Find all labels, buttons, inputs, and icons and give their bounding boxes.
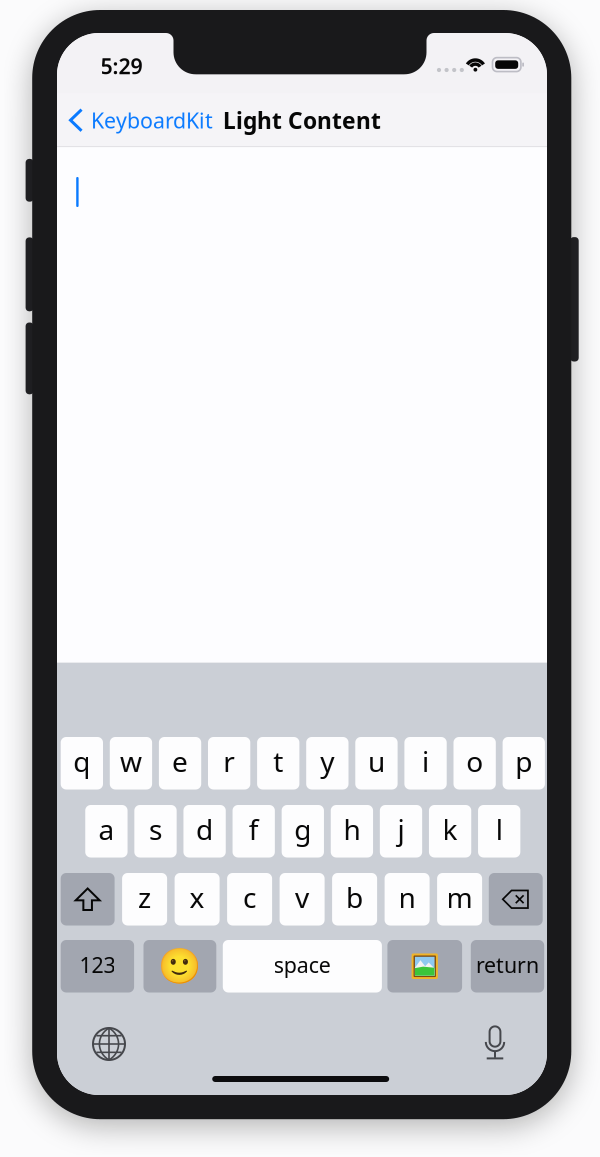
staticText: f bbox=[249, 811, 259, 848]
button[interactable]: 123 bbox=[61, 940, 134, 992]
button[interactable]: KeyboardKit bbox=[69, 99, 213, 141]
button[interactable]: Delete bbox=[489, 873, 543, 925]
staticText: l bbox=[496, 811, 503, 848]
button[interactable]: o bbox=[453, 737, 496, 789]
staticText: r bbox=[223, 743, 235, 780]
button[interactable]: m bbox=[437, 873, 482, 925]
button[interactable]: q bbox=[61, 737, 103, 789]
button[interactable]: i bbox=[404, 737, 447, 789]
staticText: j bbox=[397, 811, 404, 848]
staticText: n bbox=[399, 879, 416, 916]
staticText: Light Content bbox=[223, 105, 381, 135]
button[interactable]: Next keyboard bbox=[85, 1020, 133, 1068]
staticText: u bbox=[368, 743, 385, 780]
button[interactable]: g bbox=[282, 805, 324, 857]
staticText: s bbox=[149, 811, 162, 848]
staticText: a bbox=[98, 811, 114, 848]
staticText: 5:29 bbox=[101, 52, 143, 80]
button[interactable]: l bbox=[478, 805, 520, 857]
staticText: 123 bbox=[79, 951, 115, 979]
button[interactable]: z bbox=[122, 873, 167, 925]
staticText: w bbox=[120, 743, 142, 780]
staticText: return bbox=[476, 951, 539, 979]
button[interactable]: space bbox=[223, 940, 382, 992]
button[interactable]: r bbox=[208, 737, 250, 789]
staticText: o bbox=[466, 743, 483, 780]
staticText: z bbox=[138, 879, 151, 916]
staticText: b bbox=[346, 879, 363, 916]
button[interactable]: h bbox=[331, 805, 373, 857]
staticText: x bbox=[190, 879, 205, 916]
staticText: m bbox=[447, 879, 473, 916]
button[interactable]: c bbox=[227, 873, 272, 925]
button[interactable]: v bbox=[280, 873, 325, 925]
button[interactable]: y bbox=[306, 737, 348, 789]
button[interactable]: Dictation bbox=[476, 1018, 513, 1067]
staticText: 🙂 bbox=[158, 946, 201, 986]
staticText: i bbox=[422, 743, 429, 780]
staticText: e bbox=[172, 743, 188, 780]
button[interactable]: t bbox=[257, 737, 299, 789]
button[interactable]: e bbox=[159, 737, 201, 789]
button[interactable]: f bbox=[232, 805, 275, 857]
button[interactable]: w bbox=[110, 737, 152, 789]
button[interactable]: n bbox=[385, 873, 430, 925]
button[interactable]: s bbox=[134, 805, 177, 857]
staticText: d bbox=[196, 811, 213, 848]
staticText: v bbox=[295, 879, 309, 916]
button[interactable]: j bbox=[380, 805, 422, 857]
button[interactable]: Shift bbox=[61, 873, 115, 925]
staticText: g bbox=[294, 811, 311, 848]
staticText: t bbox=[273, 743, 283, 780]
button[interactable]: d bbox=[183, 805, 226, 857]
button[interactable]: return bbox=[471, 940, 544, 992]
button[interactable]: u bbox=[355, 737, 398, 789]
button[interactable]: Emoji keyboard bbox=[143, 940, 216, 992]
button[interactable]: k bbox=[429, 805, 471, 857]
staticText: p bbox=[515, 743, 532, 780]
staticText: space bbox=[274, 951, 331, 979]
button[interactable]: b bbox=[332, 873, 377, 925]
button[interactable]: Images bbox=[387, 940, 462, 992]
staticText: y bbox=[320, 743, 334, 780]
staticText: KeyboardKit bbox=[91, 106, 213, 134]
button[interactable]: a bbox=[85, 805, 127, 857]
staticText: c bbox=[243, 879, 256, 916]
button[interactable]: x bbox=[175, 873, 220, 925]
staticText: k bbox=[443, 811, 458, 848]
staticText: q bbox=[73, 743, 90, 780]
staticText: h bbox=[343, 811, 360, 848]
button[interactable]: p bbox=[503, 737, 545, 789]
